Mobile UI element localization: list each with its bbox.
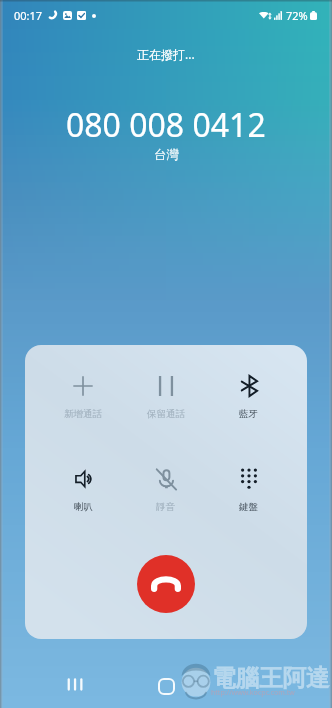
button[interactable]: 保留通話: [124, 375, 207, 420]
staticText: http://www.kocpc.com.tw: [211, 688, 295, 698]
staticText: 新增通話: [64, 408, 102, 420]
staticText: 喇叭: [74, 501, 93, 513]
staticText: 電腦王阿達: [212, 663, 330, 693]
button[interactable]: 藍牙: [207, 375, 290, 420]
button[interactable]: Recents: [60, 670, 88, 698]
staticText: 藍牙: [239, 408, 258, 420]
button[interactable]: 靜音: [124, 468, 207, 513]
staticText: 鍵盤: [239, 501, 258, 513]
staticText: 080 008 0412: [66, 103, 266, 147]
button[interactable]: 鍵盤: [207, 468, 290, 513]
button[interactable]: End call: [137, 555, 195, 613]
staticText: 台灣: [154, 147, 179, 163]
staticText: 靜音: [156, 501, 175, 513]
button[interactable]: 喇叭: [42, 468, 124, 513]
staticText: 保留通話: [147, 408, 185, 420]
staticText: 00:17: [14, 8, 43, 23]
staticText: 72%: [286, 8, 308, 23]
button[interactable]: 新增通話: [42, 375, 124, 420]
button[interactable]: Home: [152, 672, 180, 700]
staticText: 正在撥打...: [137, 46, 195, 62]
